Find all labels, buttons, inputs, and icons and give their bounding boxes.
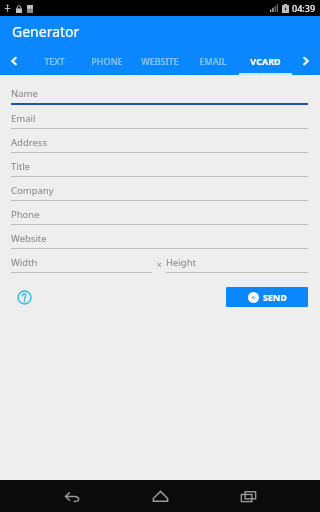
staticText: Phone [11,208,40,221]
button[interactable]: Width [11,252,152,276]
staticText: Name [11,87,38,100]
staticText: Company [11,184,54,197]
staticText: SEND [263,291,287,303]
button[interactable]: Home [129,480,191,512]
button[interactable]: Name [11,83,308,108]
button[interactable]: SEND [226,287,308,307]
staticText: Website [11,232,47,245]
button[interactable]: Title [11,156,308,180]
staticText: PHONE [91,55,123,67]
button[interactable]: Help [11,284,37,310]
staticText: Address [11,136,47,149]
button[interactable]: Back [41,480,103,512]
button[interactable]: VCARD [239,47,292,75]
staticText: WEBSITE [141,55,179,67]
staticText: Height [166,256,196,269]
staticText: VCARD [250,55,281,67]
staticText: 04:39 [292,2,316,14]
staticText: Title [11,160,30,173]
staticText: Email [11,112,36,125]
button[interactable]: Previous tab [0,47,28,75]
button[interactable]: TEXT [28,47,80,75]
button[interactable]: Website [11,228,308,252]
button[interactable]: Company [11,180,308,204]
button[interactable]: Next tab [292,47,320,75]
button[interactable]: EMAIL [186,47,239,75]
button[interactable]: Recent apps [217,480,279,512]
button[interactable]: Address [11,132,308,156]
staticText: TEXT [44,55,65,67]
button[interactable]: WEBSITE [133,47,186,75]
staticText: EMAIL [199,55,227,67]
staticText: × [157,259,162,270]
staticText: Width [11,256,38,269]
button[interactable]: Phone [11,204,308,228]
button[interactable]: Height [166,252,308,276]
staticText: Generator [12,22,80,41]
button[interactable]: PHONE [80,47,133,75]
button[interactable]: Email [11,108,308,132]
